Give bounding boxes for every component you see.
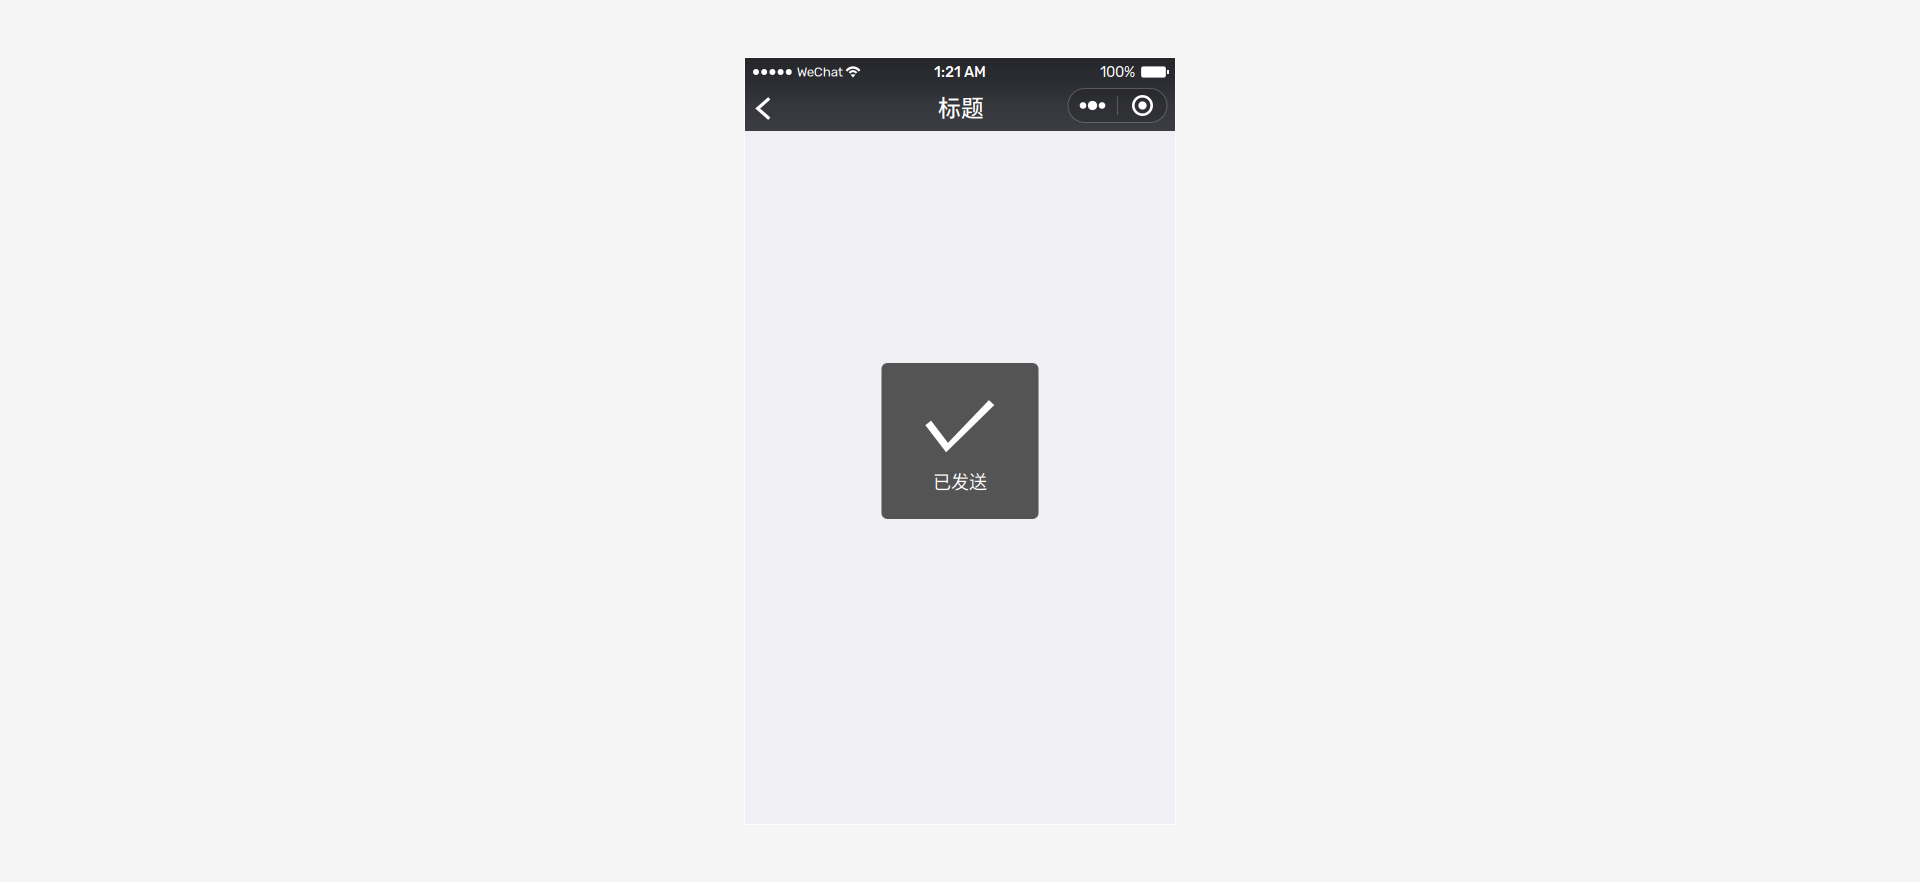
staticText: 标题 bbox=[938, 90, 984, 123]
staticText: WeChat bbox=[797, 64, 843, 80]
staticText: 1:21 AM bbox=[934, 63, 986, 81]
staticText: 100% bbox=[1100, 63, 1135, 81]
button[interactable]: Back bbox=[745, 86, 782, 131]
button[interactable]: More options bbox=[1068, 91, 1167, 125]
staticText: 已发送 bbox=[933, 468, 987, 494]
